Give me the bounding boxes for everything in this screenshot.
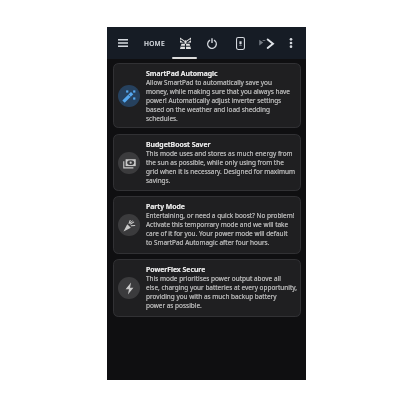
staticText: Party Mode bbox=[146, 202, 185, 211]
staticText: Entertaining, or need a quick boost? No … bbox=[146, 211, 295, 247]
staticText: Allow SmartPad to automatically save you… bbox=[146, 78, 290, 123]
button[interactable]: HOME bbox=[140, 34, 168, 52]
button[interactable]: SmartPad Automagic bbox=[113, 63, 301, 128]
staticText: This mode prioritises power output above… bbox=[146, 274, 297, 310]
button[interactable]: PowerFlex Secure bbox=[113, 259, 301, 317]
staticText: SmartPad Automagic bbox=[146, 69, 218, 78]
button[interactable]: BudgetBoost Saver bbox=[113, 134, 301, 191]
button[interactable]: Party Mode bbox=[113, 196, 301, 254]
button[interactable]: Next bbox=[256, 33, 276, 53]
button[interactable]: Power bbox=[202, 33, 222, 53]
button[interactable]: Solar bbox=[175, 31, 195, 59]
staticText: This mode uses and stores as much energy… bbox=[146, 149, 295, 185]
staticText: PowerFlex Secure bbox=[146, 265, 206, 274]
button[interactable]: More options bbox=[281, 33, 301, 53]
staticText: BudgetBoost Saver bbox=[146, 140, 211, 149]
button[interactable]: Battery bbox=[230, 33, 250, 53]
button[interactable]: Menu bbox=[113, 33, 133, 53]
staticText: HOME bbox=[144, 39, 165, 48]
